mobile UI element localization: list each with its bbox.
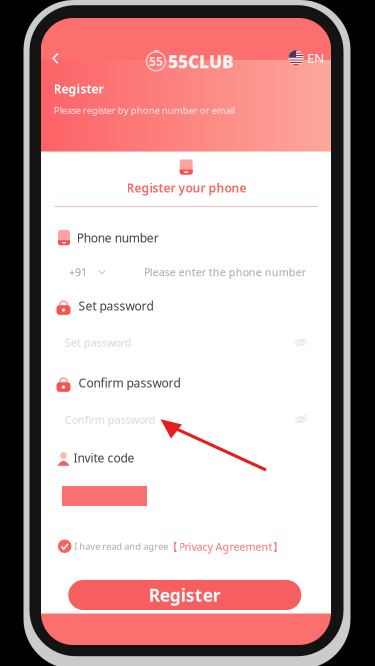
staticText: Register [149, 583, 221, 606]
staticText: Register [53, 81, 103, 97]
button[interactable]: Show confirm password [289, 408, 313, 430]
staticText: Set password [78, 298, 153, 314]
staticText: +91 [69, 265, 87, 279]
button[interactable]: Register [68, 580, 301, 610]
staticText: Register your phone [126, 180, 246, 196]
button[interactable]: Country code +91 [69, 262, 106, 282]
staticText: Invite code [73, 450, 134, 466]
staticText: 55CLUB [168, 50, 234, 73]
staticText: Confirm password [65, 412, 156, 427]
staticText: Please enter the phone number [144, 265, 306, 279]
staticText: Phone number [77, 230, 159, 246]
staticText: I have read and agree [74, 540, 168, 552]
staticText: 【Privacy Agreement】 [167, 539, 283, 554]
button[interactable]: Accept privacy agreement [58, 539, 71, 553]
staticText: Please register by phone number or email [54, 104, 235, 116]
button[interactable]: Show password [289, 331, 313, 353]
staticText: Set password [65, 335, 132, 350]
staticText: EN [307, 49, 324, 67]
button[interactable]: Back [43, 46, 67, 70]
staticText: 55 [149, 53, 163, 69]
button[interactable]: 【Privacy Agreement】 [167, 539, 283, 554]
button[interactable]: Language: English [288, 49, 324, 67]
staticText: Confirm password [78, 375, 180, 391]
